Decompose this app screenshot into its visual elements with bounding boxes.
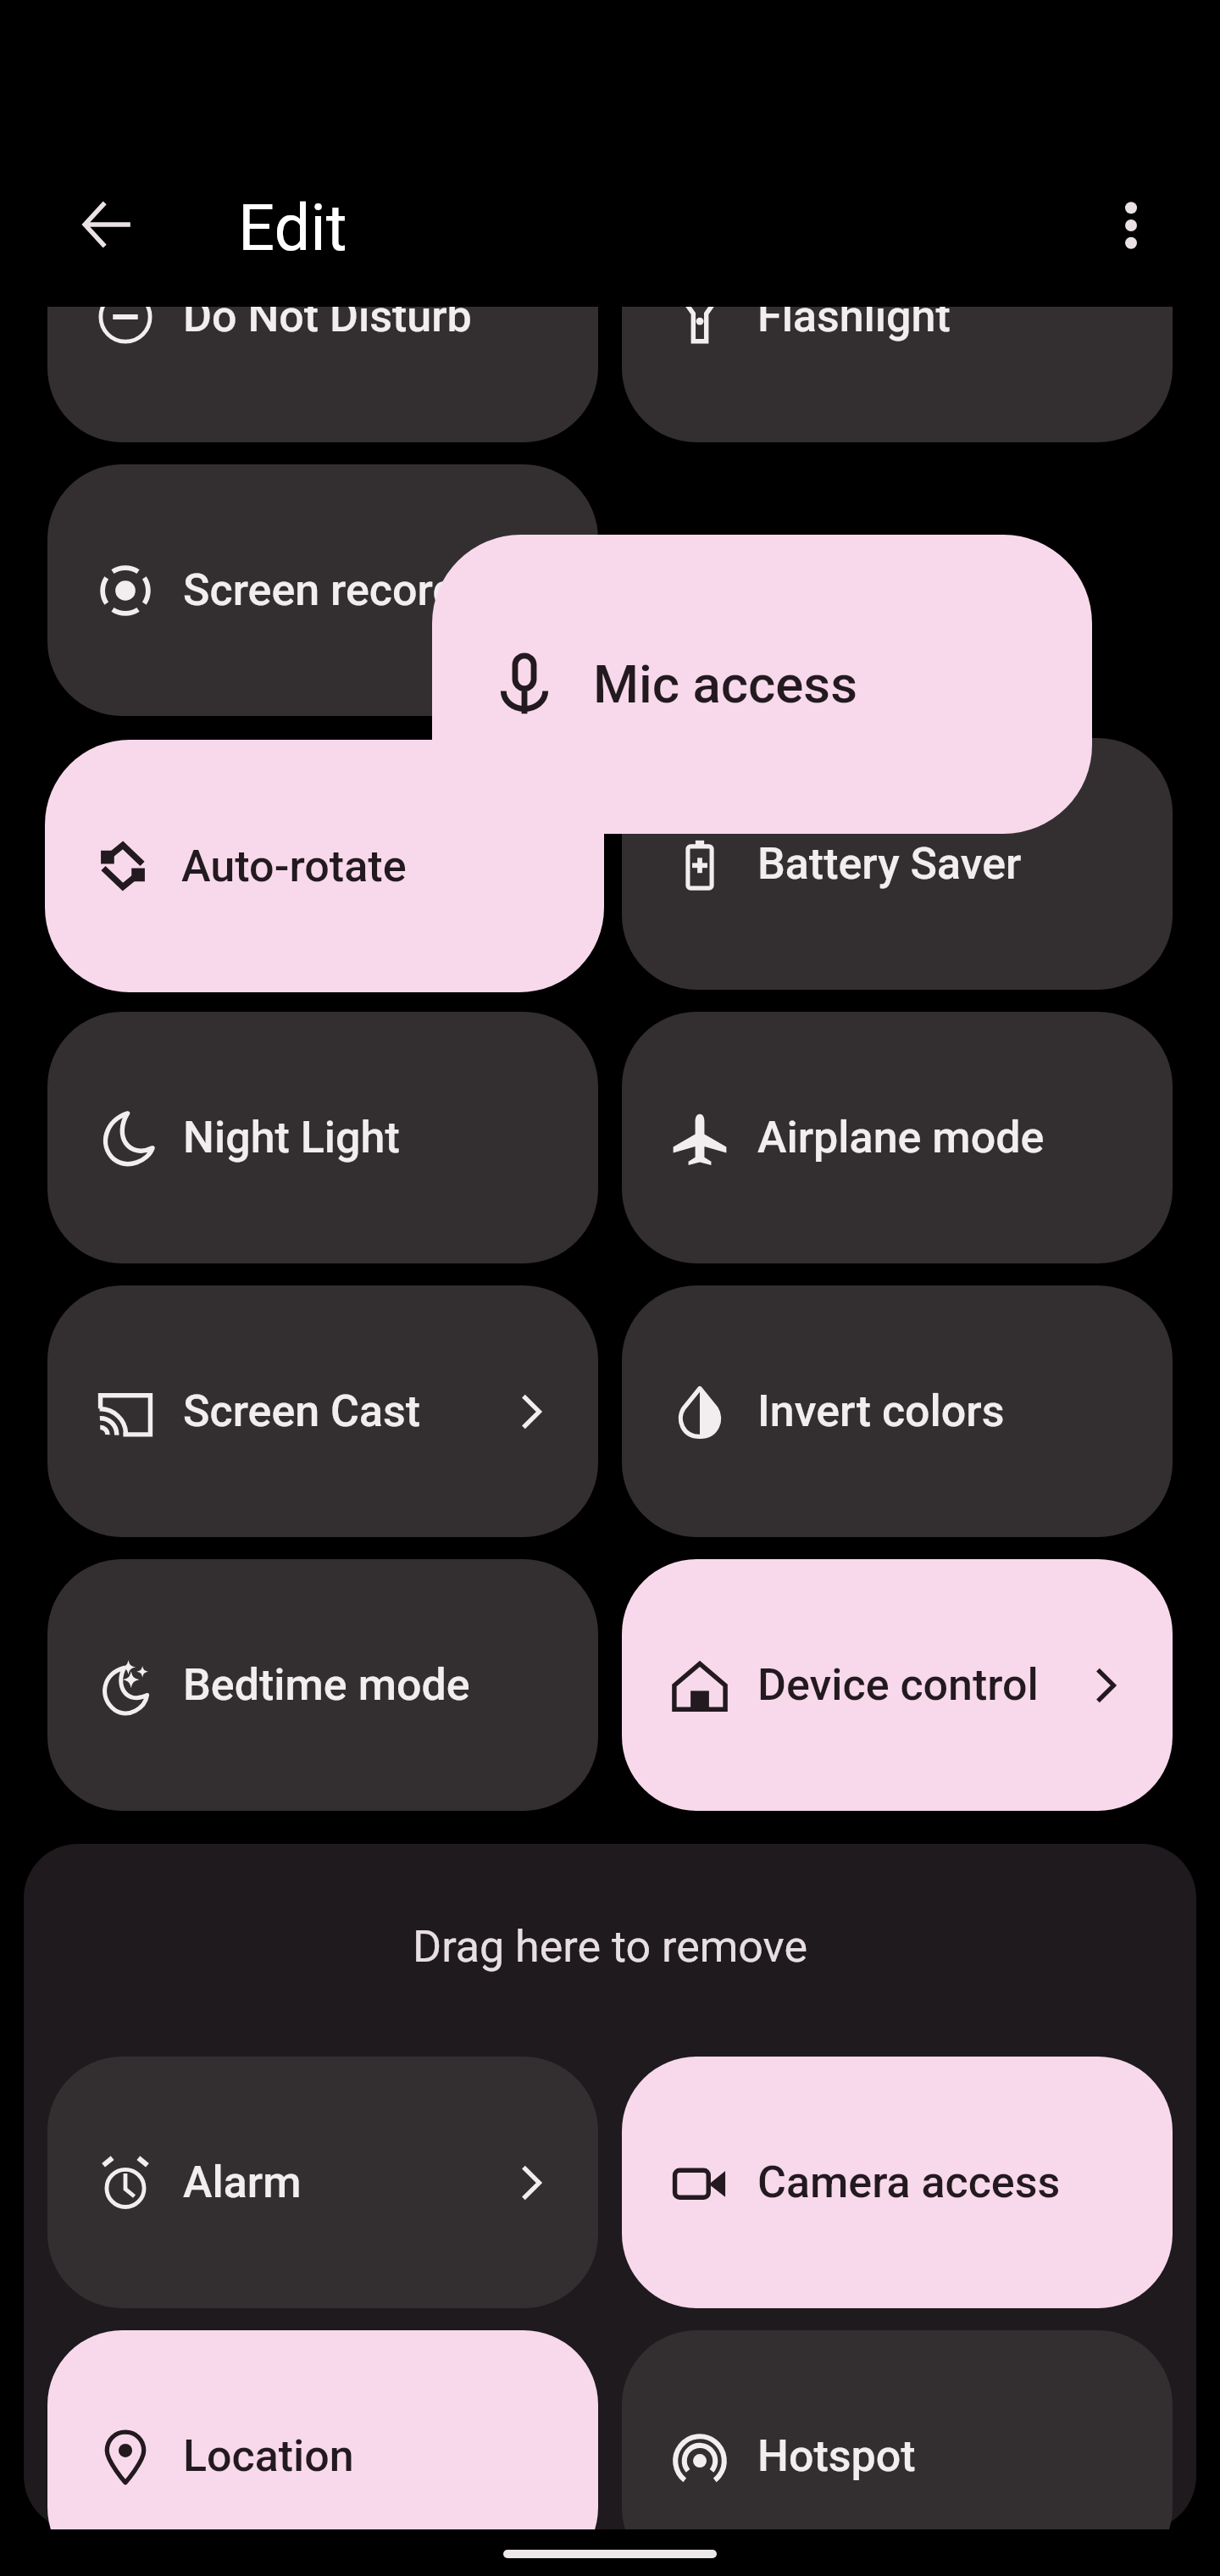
button[interactable]: Device control [622,1559,1173,1811]
button[interactable]: Alarm [47,2057,598,2308]
button[interactable]: Airplane mode [622,1012,1173,1263]
button[interactable]: Navigate up [59,177,154,272]
staticText: Auto-rotate [181,841,407,892]
button[interactable]: Do Not Disturb [47,191,598,442]
staticText: Device control [757,1659,1039,1711]
staticText: Screen Cast [183,1385,421,1437]
staticText: Alarm [183,2157,302,2208]
staticText: Mic access [593,654,857,715]
button[interactable]: Screen record [47,464,598,716]
button[interactable]: Flashlight [622,191,1173,442]
button[interactable]: Battery Saver [622,738,1173,990]
staticText: Invert colors [757,1385,1005,1437]
staticText: Flashlight [757,291,951,342]
staticText: Drag here to remove [413,1921,808,1973]
button[interactable]: Invert colors [622,1285,1173,1537]
button[interactable]: More options [1084,178,1178,273]
button[interactable]: Bedtime mode [47,1559,598,1811]
button[interactable]: Screen Cast [47,1285,598,1537]
staticText: Edit [238,190,347,265]
button[interactable]: Camera access [622,2057,1173,2308]
staticText: Do Not Disturb [183,291,472,342]
button[interactable]: Auto-rotate [45,740,604,992]
button[interactable]: Mic access [432,535,1092,834]
staticText: Hotspot [757,2430,916,2482]
staticText: Location [183,2430,354,2482]
staticText: Airplane mode [757,1112,1045,1163]
button[interactable]: Hotspot [622,2330,1173,2576]
staticText: Screen record [183,564,457,616]
button[interactable]: Location [47,2330,598,2576]
staticText: Battery Saver [757,838,1022,890]
staticText: Camera access [757,2157,1061,2208]
button[interactable]: Night Light [47,1012,598,1263]
staticText: Night Light [183,1112,400,1163]
staticText: Bedtime mode [183,1659,470,1711]
